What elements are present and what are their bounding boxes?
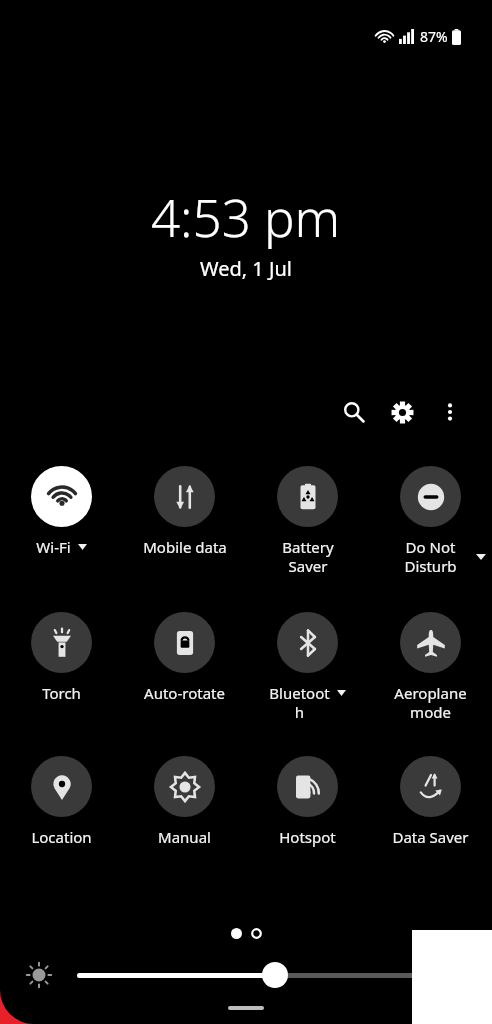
button[interactable] xyxy=(77,962,492,988)
button[interactable]: Mobile data xyxy=(123,466,246,557)
button[interactable]: Wi-Fi xyxy=(0,466,123,557)
button[interactable]: More options xyxy=(428,390,472,434)
staticText: 87% xyxy=(420,27,448,46)
button[interactable]: Auto-rotate xyxy=(123,612,246,703)
button[interactable]: Location xyxy=(0,756,123,847)
staticText: Wed, 1 Jul xyxy=(200,255,292,282)
staticText: Location xyxy=(31,827,92,847)
button[interactable]: Torch xyxy=(0,612,123,703)
button[interactable]: Data Saver xyxy=(369,756,492,847)
staticText: Hotspot xyxy=(279,827,336,847)
staticText: Do Not Disturb xyxy=(404,537,457,576)
button[interactable]: Search xyxy=(332,390,376,434)
button[interactable]: Aeroplane mode xyxy=(369,612,492,722)
staticText: Torch xyxy=(42,683,81,703)
button[interactable]: Settings xyxy=(380,390,424,434)
button[interactable]: Bluetoot h xyxy=(246,612,369,722)
button[interactable]: Hotspot xyxy=(246,756,369,847)
staticText: Auto-rotate xyxy=(144,683,225,703)
staticText: Manual xyxy=(158,827,211,847)
button[interactable]: Battery Saver xyxy=(246,466,369,576)
staticText: Battery Saver xyxy=(282,537,334,576)
staticText: 4:53 pm xyxy=(151,182,341,251)
staticText: Bluetoot h xyxy=(269,683,330,722)
staticText: Mobile data xyxy=(143,537,227,557)
staticText: Data Saver xyxy=(392,827,469,847)
button[interactable]: Do Not Disturb xyxy=(369,466,492,576)
button[interactable]: Manual xyxy=(123,756,246,847)
staticText: Wi-Fi xyxy=(36,537,71,557)
staticText: Aeroplane mode xyxy=(394,683,467,722)
button[interactable]: Auto brightness xyxy=(22,958,56,992)
